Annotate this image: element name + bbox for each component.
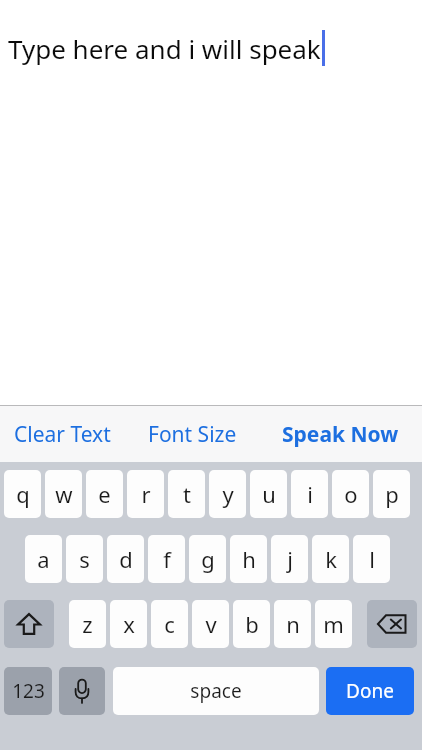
button[interactable]: w [45, 470, 82, 518]
staticText: t [183, 479, 191, 509]
button[interactable]: u [250, 470, 287, 518]
button[interactable]: i [291, 470, 328, 518]
staticText: v [205, 609, 217, 639]
button[interactable]: m [315, 600, 352, 648]
button[interactable]: a [25, 535, 62, 583]
staticText: e [98, 479, 111, 509]
staticText: Font Size [148, 420, 237, 449]
button[interactable]: z [69, 600, 106, 648]
button[interactable]: j [271, 535, 308, 583]
button[interactable]: v [192, 600, 229, 648]
button[interactable]: o [332, 470, 369, 518]
staticText: c [164, 609, 175, 639]
button[interactable]: h [230, 535, 267, 583]
button[interactable]: Clear Text [0, 406, 125, 462]
staticText: q [16, 479, 30, 509]
staticText: 123 [12, 678, 45, 704]
staticText: Type here and i will speak [8, 31, 321, 66]
button[interactable]: p [373, 470, 410, 518]
button[interactable]: r [127, 470, 164, 518]
button[interactable]: Voice input [59, 667, 105, 715]
staticText: z [82, 609, 93, 639]
staticText: y [222, 479, 234, 509]
button[interactable]: b [233, 600, 270, 648]
staticText: b [245, 609, 259, 639]
staticText: d [119, 544, 133, 574]
button[interactable]: t [168, 470, 205, 518]
button[interactable]: Font Size [125, 406, 259, 462]
button[interactable]: d [107, 535, 144, 583]
button[interactable]: k [312, 535, 349, 583]
staticText: a [37, 544, 50, 574]
staticText: r [141, 479, 151, 509]
staticText: o [344, 479, 358, 509]
staticText: l [369, 544, 375, 574]
staticText: n [286, 609, 300, 639]
staticText: s [79, 544, 90, 574]
button[interactable]: space [113, 667, 319, 715]
button[interactable]: e [86, 470, 123, 518]
staticText: j [287, 544, 293, 574]
button[interactable]: x [110, 600, 147, 648]
staticText: x [123, 609, 135, 639]
button[interactable]: Done [326, 667, 414, 715]
button[interactable]: Shift [4, 600, 54, 648]
staticText: m [323, 609, 344, 639]
staticText: Speak Now [282, 420, 399, 449]
staticText: h [242, 544, 256, 574]
button[interactable]: l [353, 535, 390, 583]
staticText: Done [346, 678, 394, 704]
button[interactable]: Speak Now [259, 406, 422, 462]
button[interactable]: s [66, 535, 103, 583]
staticText: g [201, 544, 215, 574]
staticText: i [307, 479, 313, 509]
staticText: p [385, 479, 399, 509]
staticText: space [190, 678, 242, 704]
staticText: w [55, 479, 73, 509]
button[interactable]: g [189, 535, 226, 583]
button[interactable]: n [274, 600, 311, 648]
staticText: Clear Text [14, 420, 111, 449]
button[interactable]: 123 [4, 667, 52, 715]
button[interactable]: y [209, 470, 246, 518]
staticText: k [325, 544, 337, 574]
button[interactable]: q [4, 470, 41, 518]
button[interactable]: Backspace [367, 600, 417, 648]
button[interactable]: c [151, 600, 188, 648]
staticText: u [262, 479, 276, 509]
button[interactable]: f [148, 535, 185, 583]
staticText: f [163, 544, 171, 574]
